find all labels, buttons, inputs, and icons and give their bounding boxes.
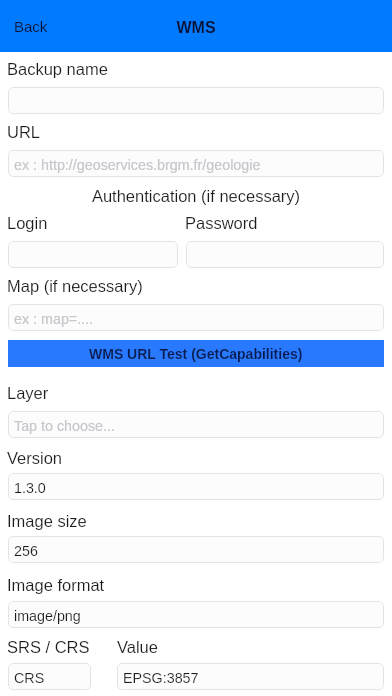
staticText: 256 xyxy=(14,543,38,559)
staticText: Backup name xyxy=(7,60,108,78)
staticText: 1.3.0 xyxy=(14,480,46,496)
staticText: Layer xyxy=(7,384,49,402)
button[interactable]: ex : http://geoservices.brgm.fr/geologie xyxy=(8,150,384,177)
staticText: Version xyxy=(7,449,63,467)
staticText: Tap to choose... xyxy=(14,418,115,434)
button[interactable]: CRS xyxy=(8,663,91,690)
button[interactable]: 1.3.0 xyxy=(8,473,384,500)
staticText: URL xyxy=(7,123,41,141)
staticText: SRS / CRS xyxy=(7,638,90,656)
button[interactable] xyxy=(8,87,384,114)
staticText: Password xyxy=(185,214,258,232)
button[interactable]: Back xyxy=(8,15,58,39)
button[interactable]: image/png xyxy=(8,601,384,628)
staticText: Login xyxy=(7,214,48,232)
staticText: EPSG:3857 xyxy=(123,670,199,686)
button[interactable] xyxy=(186,241,384,268)
button[interactable]: 256 xyxy=(8,536,384,563)
staticText: CRS xyxy=(14,670,45,686)
staticText: Image size xyxy=(7,512,87,530)
staticText: WMS URL Test (GetCapabilities) xyxy=(89,346,303,362)
staticText: Back xyxy=(14,18,48,35)
button[interactable]: EPSG:3857 xyxy=(117,663,384,690)
staticText: ex : http://geoservices.brgm.fr/geologie xyxy=(14,157,261,173)
button[interactable]: Tap to choose... xyxy=(8,411,384,438)
staticText: Map (if necessary) xyxy=(7,277,143,295)
staticText: ex : map=.... xyxy=(14,311,94,327)
staticText: WMS xyxy=(0,19,392,37)
button[interactable]: WMS URL Test (GetCapabilities) xyxy=(8,340,384,367)
staticText: Value xyxy=(117,638,158,656)
staticText: Authentication (if necessary) xyxy=(0,187,392,205)
button[interactable] xyxy=(8,241,178,268)
staticText: image/png xyxy=(14,608,81,624)
staticText: Image format xyxy=(7,576,105,594)
button[interactable]: ex : map=.... xyxy=(8,304,384,331)
